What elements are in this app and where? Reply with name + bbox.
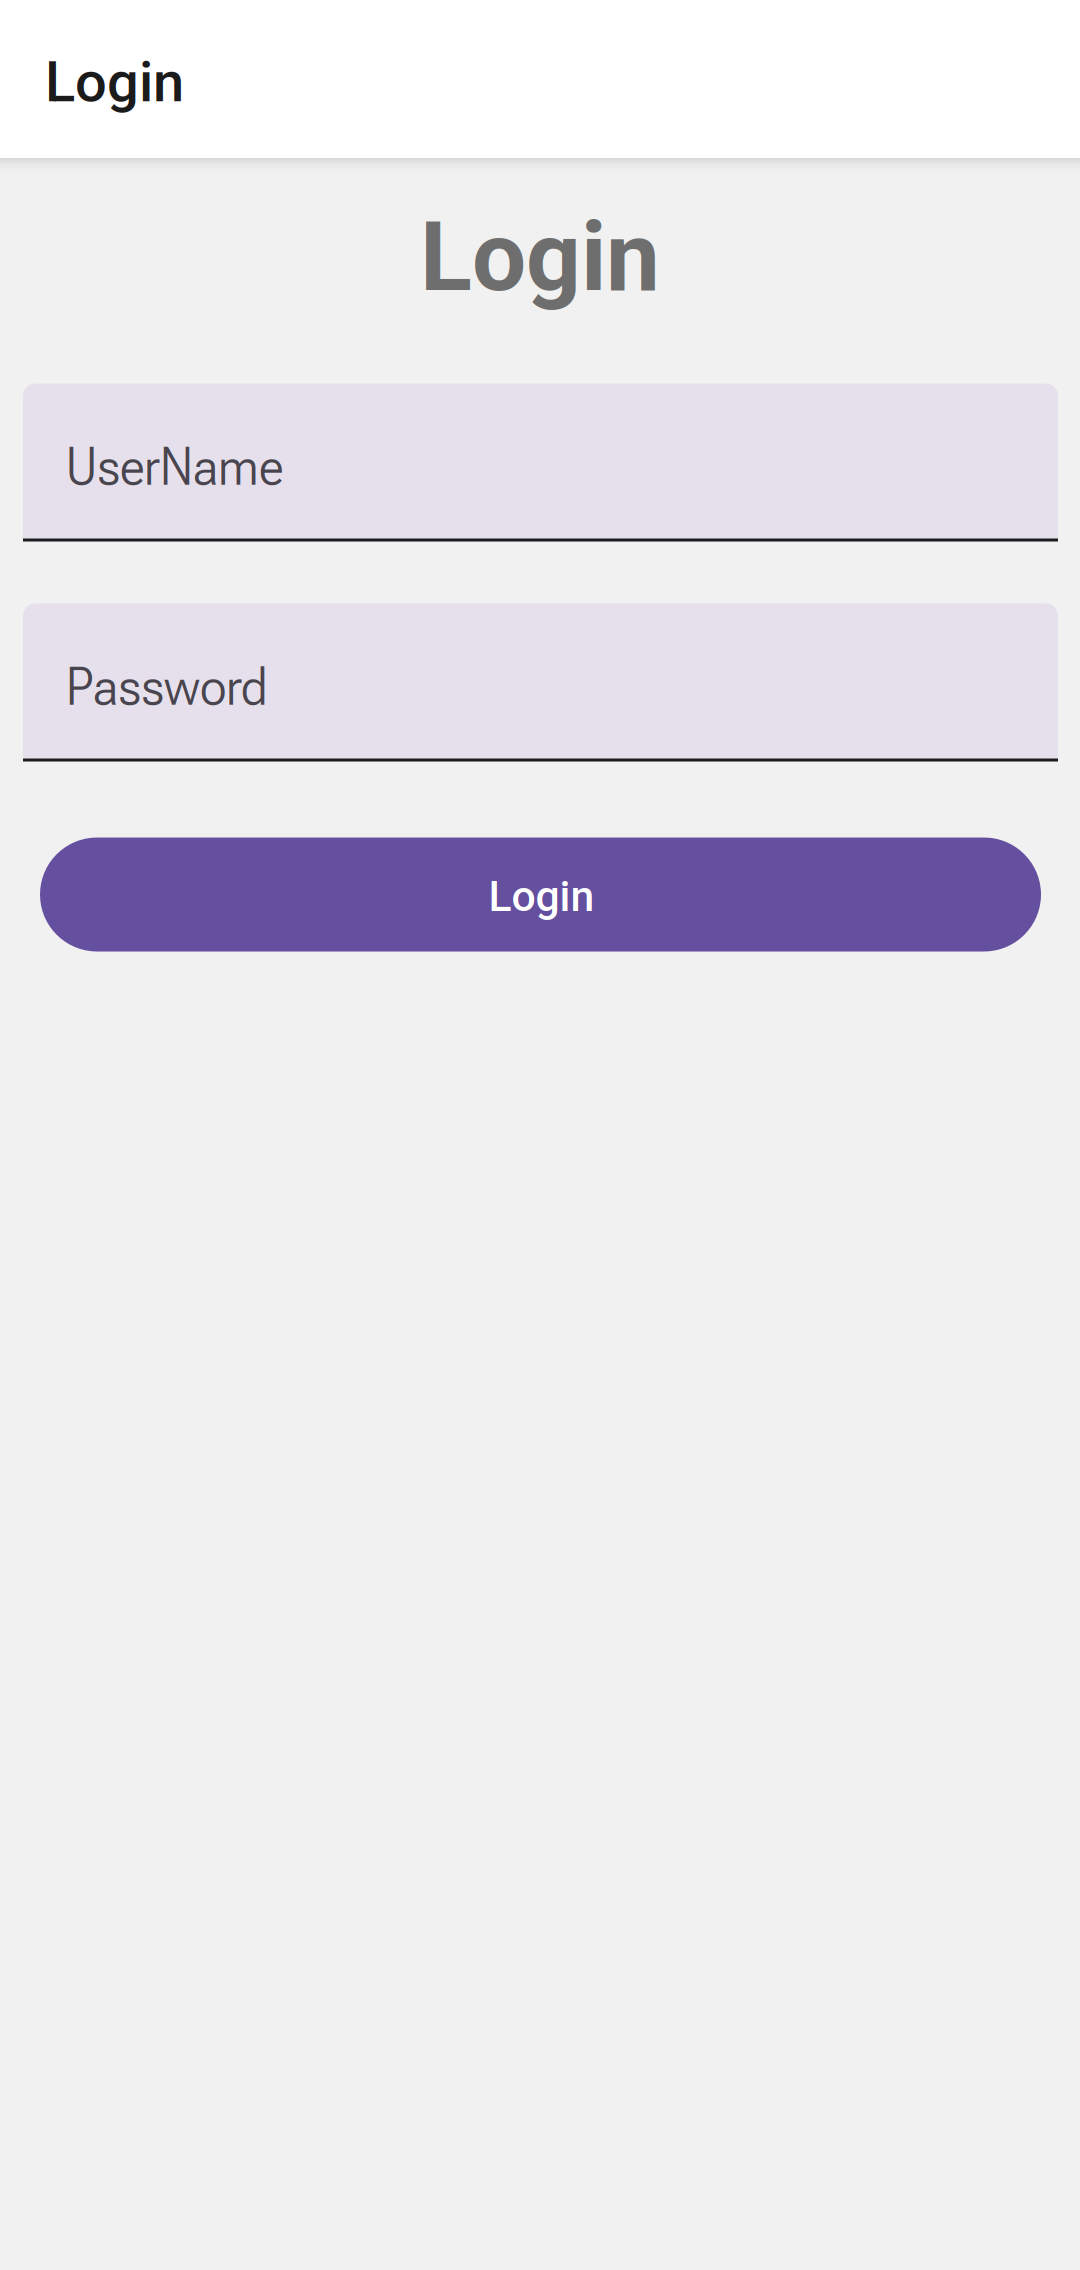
- button[interactable]: Password: [23, 603, 1058, 761]
- staticText: Login: [420, 201, 660, 313]
- button[interactable]: UserName: [23, 383, 1058, 541]
- staticText: Login: [488, 871, 594, 921]
- button[interactable]: Login: [40, 837, 1041, 951]
- staticText: Password: [66, 656, 268, 717]
- staticText: UserName: [66, 436, 283, 497]
- staticText: Login: [45, 49, 184, 115]
